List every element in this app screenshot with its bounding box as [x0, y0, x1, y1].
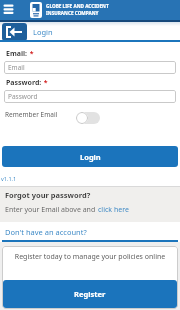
- staticText: Enter your Email above and: [5, 205, 98, 215]
- staticText: v1.1.1: [1, 175, 17, 182]
- staticText: Email:: [6, 49, 28, 59]
- button[interactable]: Register: [3, 280, 177, 308]
- staticText: Forgot your password?: [5, 190, 91, 200]
- staticText: Password: [8, 92, 38, 101]
- button[interactable]: [3, 4, 14, 15]
- staticText: *: [42, 78, 48, 88]
- staticText: *: [28, 49, 34, 59]
- staticText: Login: [80, 152, 101, 162]
- staticText: GLOBE LIFE AND ACCIDENT: [46, 3, 109, 9]
- button[interactable]: Login: [2, 146, 178, 167]
- staticText: INSURANCE COMPANY: [46, 10, 99, 16]
- button[interactable]: [76, 112, 100, 124]
- staticText: Don't have an account?: [5, 227, 87, 237]
- staticText: Password:: [6, 78, 42, 88]
- button[interactable]: [2, 23, 27, 41]
- staticText: Login: [33, 27, 53, 37]
- staticText: Register today to manage your policies o…: [0, 252, 180, 262]
- button[interactable]: click here: [98, 205, 129, 215]
- staticText: Register: [74, 289, 106, 299]
- staticText: Remember Email: [5, 110, 58, 119]
- staticText: Email: [8, 63, 25, 72]
